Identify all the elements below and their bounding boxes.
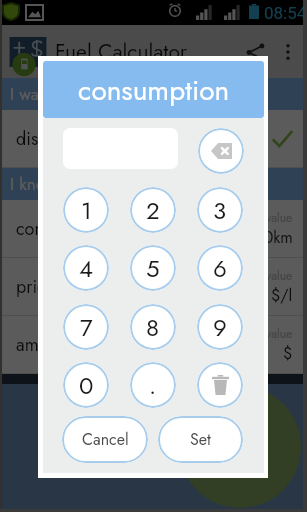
staticText: I want to travel — [10, 82, 114, 107]
staticText: distance — [16, 126, 79, 152]
button[interactable]: 2 — [130, 187, 176, 233]
button[interactable]: Set — [158, 416, 243, 463]
button[interactable]: price — [0, 258, 307, 316]
staticText: 08:54 — [264, 3, 307, 23]
button[interactable]: . — [130, 362, 176, 408]
button[interactable]: amount — [0, 316, 307, 374]
staticText: I know — [10, 172, 57, 197]
staticText: 8 — [146, 310, 160, 345]
button[interactable]: 6 — [197, 245, 243, 291]
staticText: value — [236, 119, 263, 136]
staticText: value — [266, 325, 293, 342]
staticText: Set — [190, 428, 211, 451]
staticText: amount — [16, 332, 72, 358]
staticText: Cancel — [82, 428, 129, 451]
button[interactable]: 1 — [63, 187, 109, 233]
button[interactable]: Share — [237, 34, 273, 70]
staticText: consumption — [78, 70, 230, 110]
button[interactable]: 7 — [63, 304, 109, 350]
button[interactable]: More options — [273, 37, 303, 67]
staticText: value — [266, 209, 293, 226]
button[interactable]: 8 — [130, 304, 176, 350]
button[interactable]: Backspace — [198, 128, 244, 174]
staticText: 9 — [213, 310, 227, 345]
staticText: 100km — [217, 136, 263, 159]
button[interactable]: consumption — [0, 200, 307, 258]
button[interactable]: 0 — [63, 362, 109, 408]
staticText: $/l — [271, 284, 293, 307]
staticText: . — [149, 368, 157, 403]
staticText: 0 — [79, 368, 94, 403]
staticText: 6 — [213, 251, 227, 286]
staticText: value — [266, 267, 293, 284]
button[interactable]: 4 — [63, 245, 109, 291]
button[interactable]: Clear — [197, 362, 243, 408]
staticText: $ — [283, 342, 293, 365]
staticText: consumption — [16, 216, 114, 242]
staticText: 5 — [146, 251, 160, 286]
staticText: 3 — [213, 193, 227, 228]
staticText: 4 — [79, 251, 93, 286]
button[interactable]: 3 — [197, 187, 243, 233]
staticText: 7 — [80, 310, 93, 345]
staticText: Fuel Calculator — [55, 37, 188, 67]
button[interactable]: 5 — [130, 245, 176, 291]
staticText: 1 — [81, 193, 92, 228]
staticText: l/100km — [235, 226, 293, 249]
staticText: price — [16, 274, 55, 300]
button[interactable]: Cancel — [62, 416, 148, 463]
button[interactable]: 9 — [197, 304, 243, 350]
staticText: 2 — [146, 193, 160, 228]
button[interactable]: distance — [0, 110, 307, 168]
